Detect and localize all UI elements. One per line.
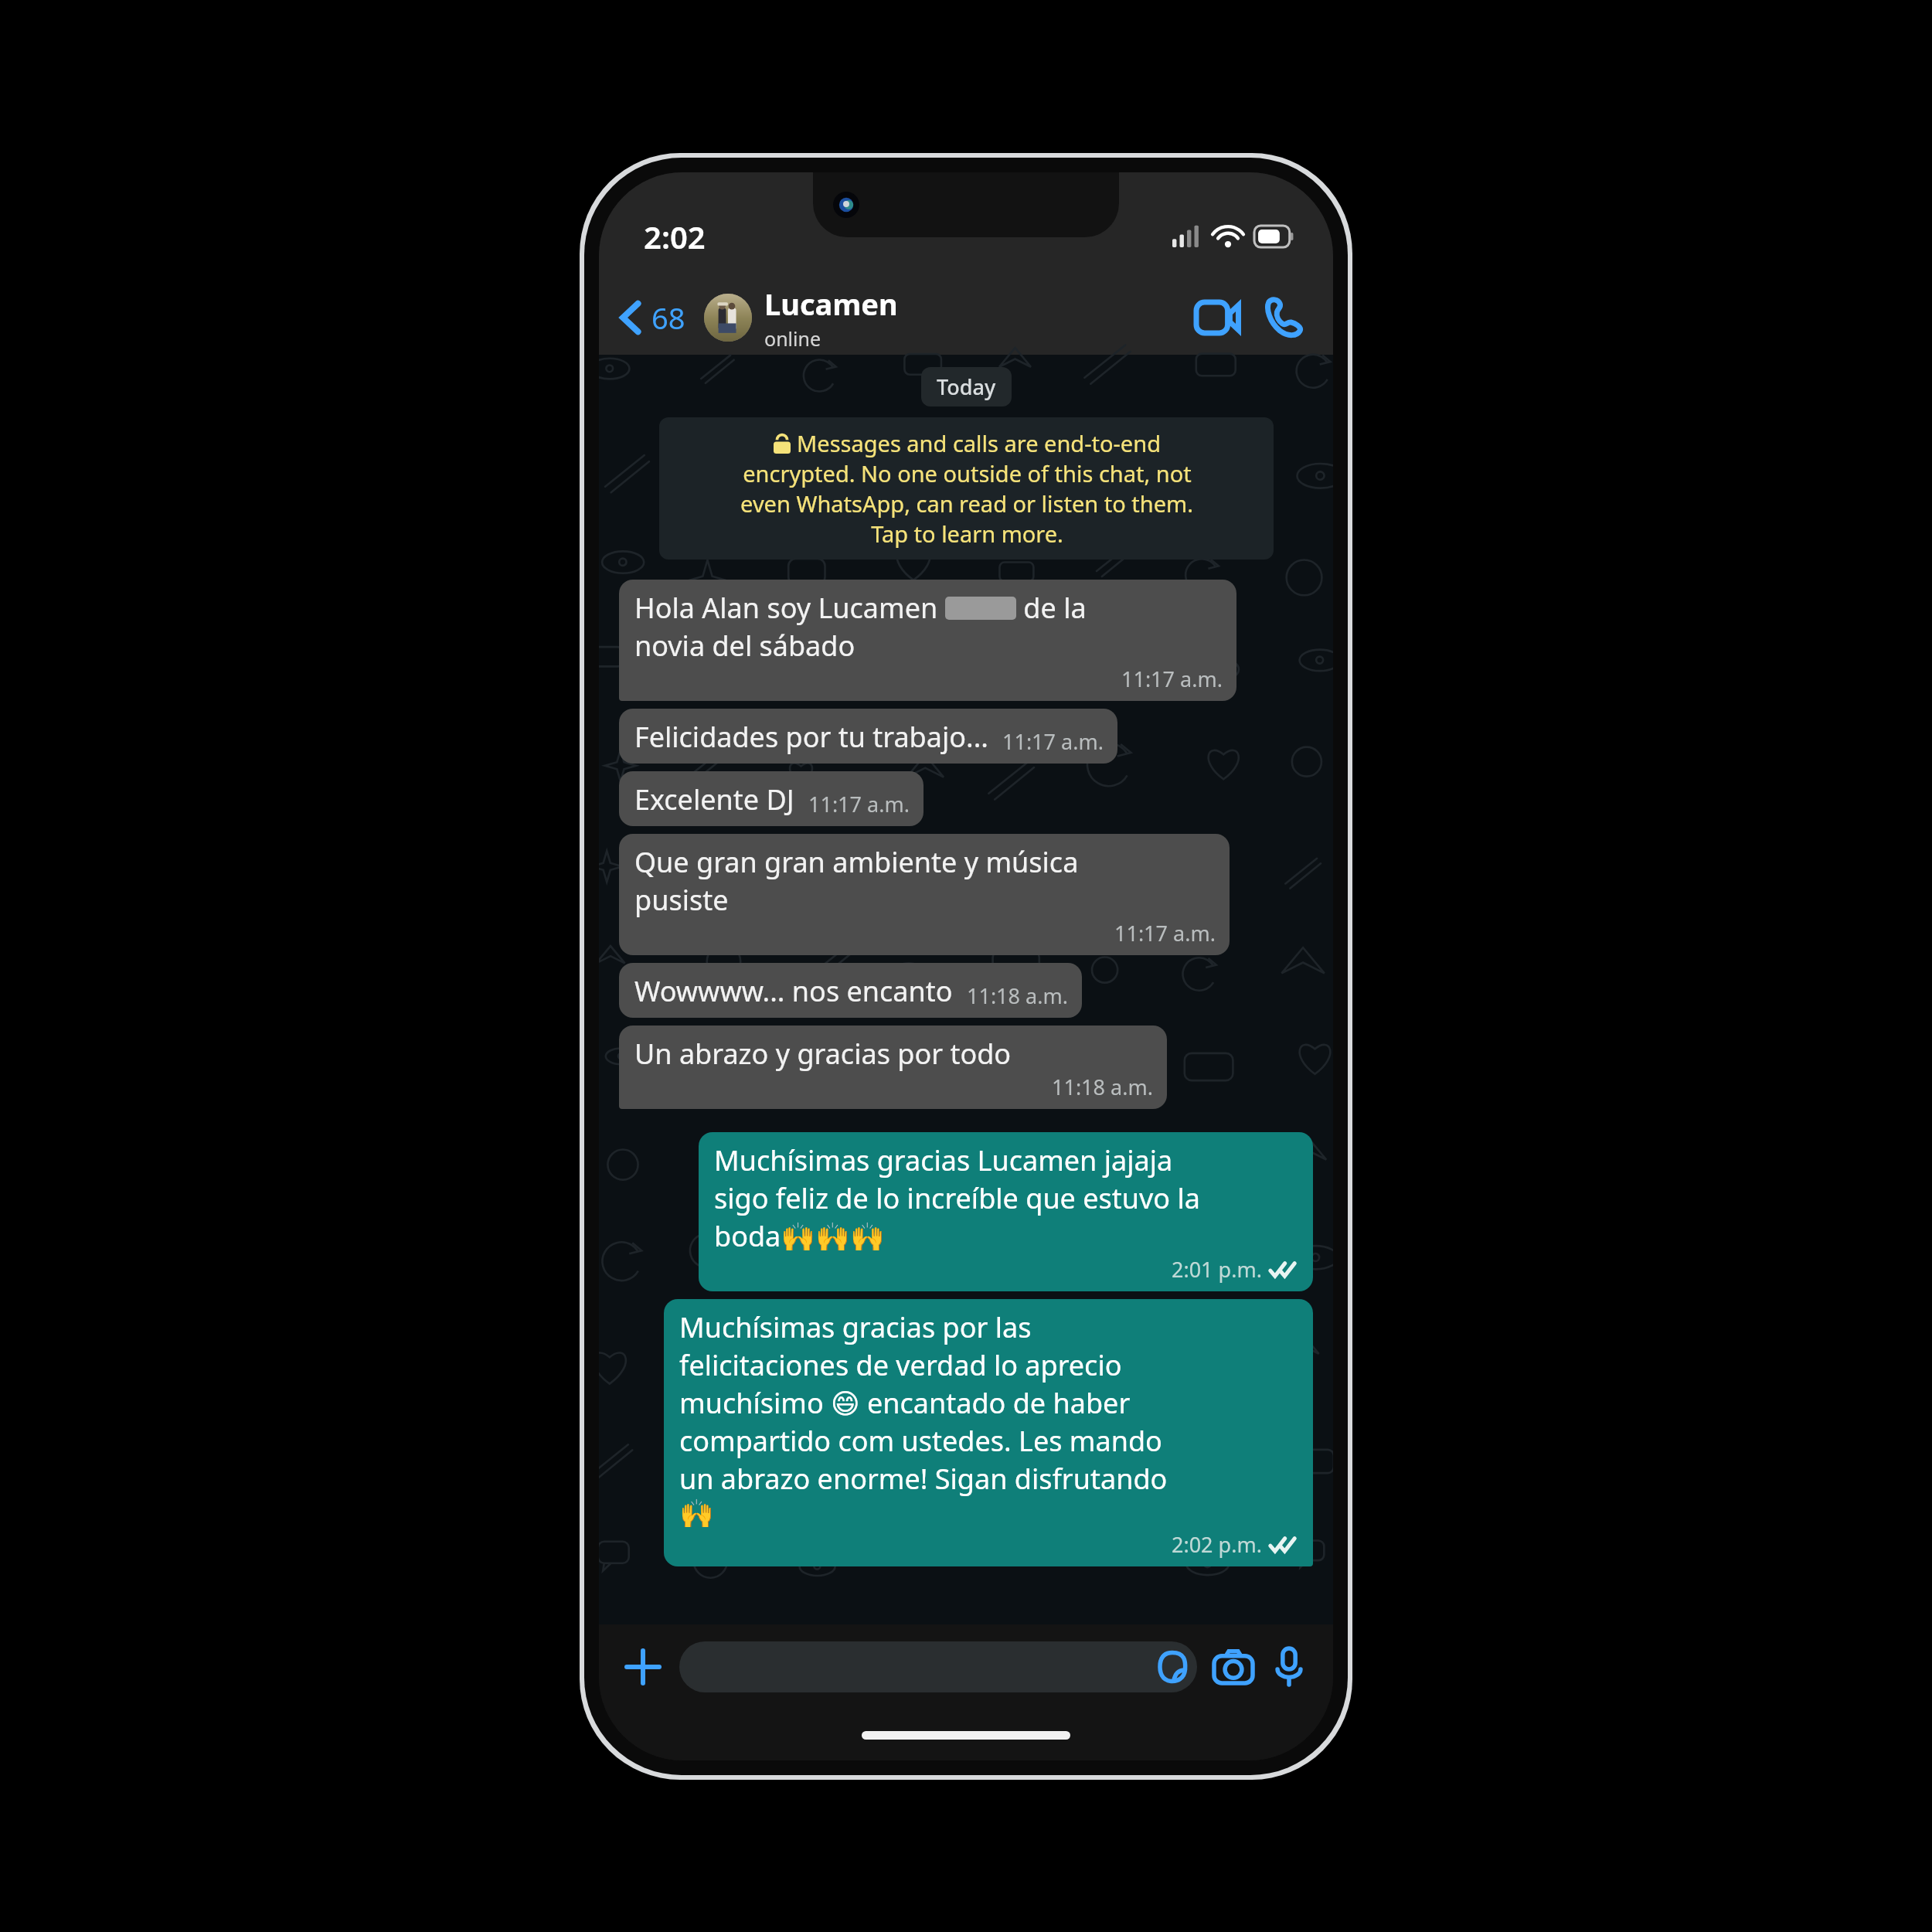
button[interactable]: Today	[921, 367, 1012, 406]
staticText: online	[764, 325, 821, 352]
button[interactable]: Wowwww... nos encanto	[619, 963, 1082, 1018]
button[interactable]: Messages and calls are end-to-end	[659, 417, 1274, 560]
staticText: 68	[651, 298, 685, 338]
staticText: Messages and calls are end-to-end	[797, 428, 1161, 458]
staticText: Tap to learn more.	[871, 519, 1063, 549]
staticText: even WhatsApp, can read or listen to the…	[740, 488, 1193, 519]
staticText: 11:18 a.m.	[1052, 1073, 1153, 1101]
button[interactable]: Muchísimas gracias Lucamen jajaja	[699, 1132, 1313, 1291]
staticText: 🙌	[679, 1498, 714, 1530]
staticText: Muchísimas gracias por las	[679, 1308, 1032, 1346]
button[interactable]: Video call	[1189, 288, 1248, 347]
staticText: Un abrazo y gracias por todo	[634, 1035, 1012, 1073]
staticText: felicitaciones de verdad lo aprecio	[679, 1346, 1122, 1384]
staticText: 11:17 a.m.	[808, 790, 910, 818]
staticText: 2:02	[644, 216, 706, 257]
button[interactable]: Camera	[1208, 1641, 1259, 1692]
button[interactable]: Muchísimas gracias por las	[664, 1299, 1313, 1566]
button[interactable]: Felicidades por tu trabajo...	[619, 709, 1117, 764]
button[interactable]: Voice call	[1254, 288, 1313, 347]
button[interactable]: Excelente DJ	[619, 771, 923, 826]
button[interactable]: Attach	[617, 1641, 668, 1692]
button[interactable]: Lucamen	[704, 284, 1189, 352]
button[interactable]: Que gran gran ambiente y música	[619, 834, 1230, 955]
staticText: Lucamen	[764, 284, 898, 324]
staticText: novia del sábado	[634, 627, 855, 665]
staticText: 2:01 p.m.	[1172, 1255, 1262, 1284]
button[interactable]: Un abrazo y gracias por todo	[619, 1026, 1167, 1109]
button[interactable]: 68	[614, 293, 690, 342]
staticText: boda🙌🙌🙌	[714, 1217, 885, 1255]
staticText: 11:18 a.m.	[967, 981, 1068, 1010]
staticText: sigo feliz de lo increíble que estuvo la	[714, 1179, 1200, 1217]
staticText: Wowwww... nos encanto	[634, 972, 953, 1010]
staticText: muchísimo 😄 encantado de haber	[679, 1384, 1131, 1422]
staticText: Today	[937, 372, 996, 401]
staticText: encrypted. No one outside of this chat, …	[743, 458, 1192, 488]
button[interactable]	[679, 1641, 1197, 1692]
staticText: Hola Alan soy Lucamen	[634, 589, 945, 627]
button[interactable]: Voice message	[1264, 1641, 1315, 1692]
staticText: Que gran gran ambiente y música	[634, 843, 1079, 881]
staticText: 11:17 a.m.	[1114, 919, 1216, 947]
button[interactable]: Hola Alan soy Lucamen	[619, 580, 1236, 701]
staticText: 11:17 a.m.	[1121, 665, 1223, 693]
staticText: de la	[1016, 589, 1087, 627]
staticText: compartido com ustedes. Les mando	[679, 1422, 1162, 1460]
staticText: un abrazo enorme! Sigan disfrutando	[679, 1460, 1168, 1498]
staticText: pusiste	[634, 881, 729, 919]
staticText: 11:17 a.m.	[1002, 727, 1104, 756]
staticText: Muchísimas gracias Lucamen jajaja	[714, 1141, 1173, 1179]
staticText: 2:02 p.m.	[1172, 1530, 1262, 1559]
staticText: Excelente DJ	[634, 781, 794, 818]
staticText: Felicidades por tu trabajo...	[634, 718, 988, 756]
